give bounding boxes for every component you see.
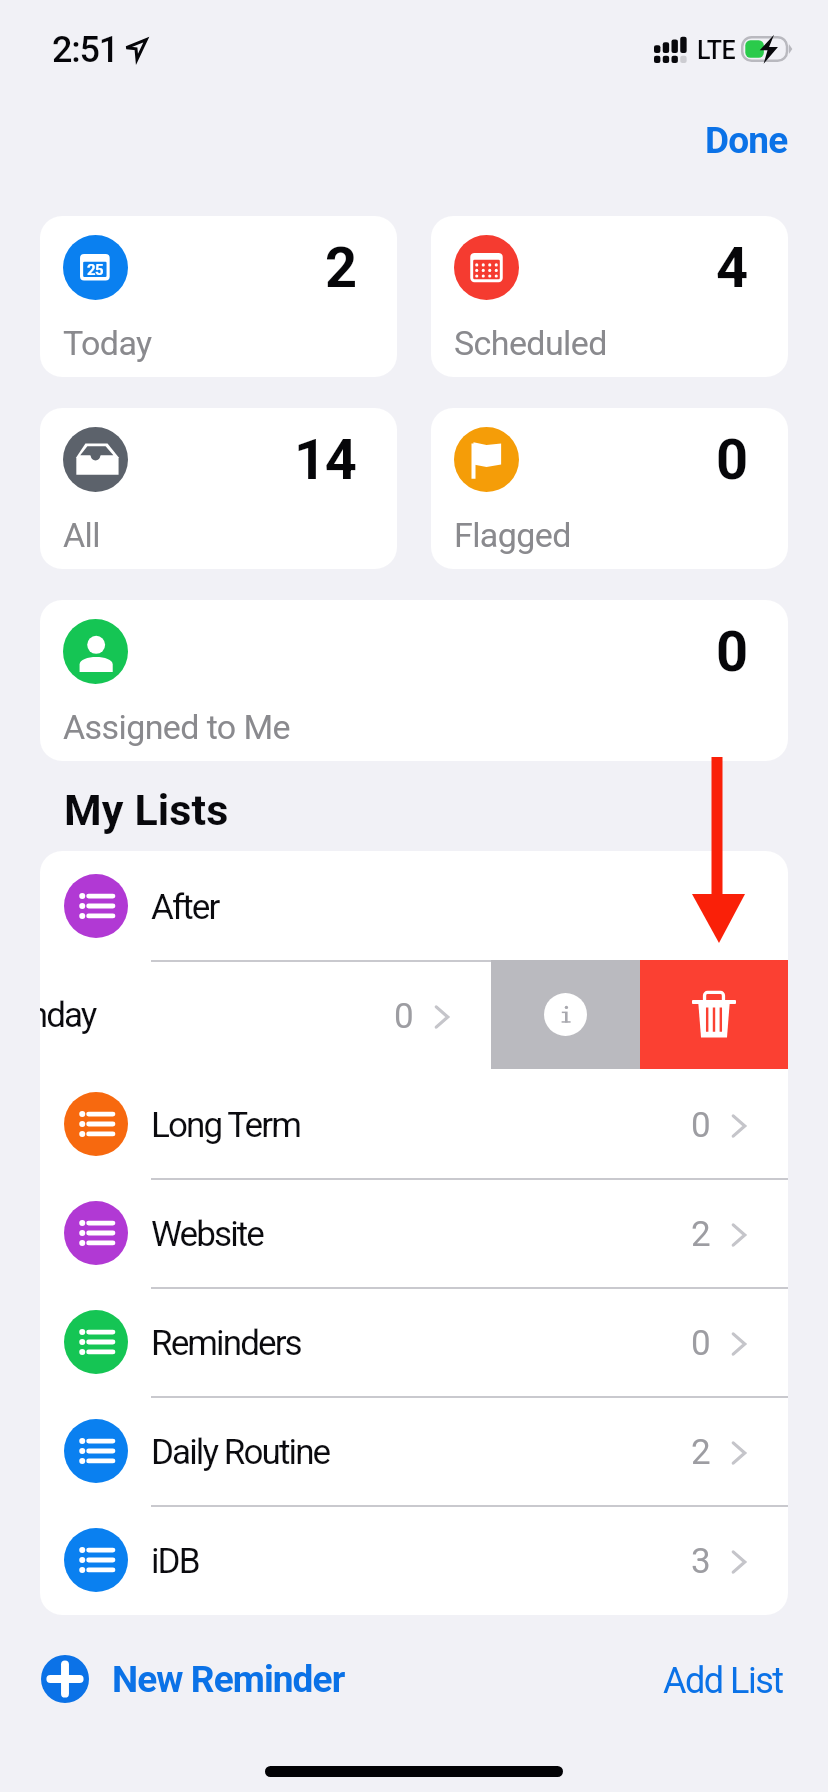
staticText: Daily Routine [151, 1432, 330, 1473]
staticText: New Reminder [112, 1658, 345, 1701]
button[interactable]: 0 [431, 408, 788, 569]
staticText: Monday [40, 995, 96, 1036]
staticText: My Lists [64, 785, 229, 835]
staticText: 14 [294, 427, 356, 493]
staticText: 4 [716, 235, 747, 301]
staticText: 0 [691, 1323, 709, 1364]
button[interactable]: Add List [663, 1660, 783, 1702]
button[interactable]: Daily Routine [40, 1396, 788, 1505]
button[interactable]: 0 [40, 600, 788, 761]
staticText: 0 [716, 619, 747, 685]
staticText: Today [63, 323, 152, 363]
button[interactable]: 25 [40, 216, 397, 377]
staticText: All [63, 515, 100, 555]
staticText: 2 [691, 1432, 709, 1473]
staticText: Scheduled [454, 323, 607, 363]
staticText: After [151, 887, 219, 928]
staticText: 2 [691, 1214, 709, 1255]
staticText: Add List [663, 1660, 783, 1702]
button[interactable]: 4 [431, 216, 788, 377]
staticText: Done [705, 119, 788, 162]
button[interactable]: iDB [40, 1505, 788, 1614]
staticText: 0 [394, 996, 412, 1037]
staticText: 25 [87, 261, 104, 279]
button[interactable]: Reminders [40, 1287, 788, 1396]
button[interactable]: Long Term [40, 1069, 788, 1178]
staticText: iDB [151, 1541, 199, 1582]
staticText: 0 [691, 1105, 709, 1146]
staticText: Flagged [454, 515, 571, 555]
staticText: Long Term [151, 1105, 300, 1146]
button[interactable]: After [40, 851, 788, 960]
button[interactable]: Details [491, 960, 640, 1069]
staticText: Website [151, 1214, 264, 1255]
staticText: 2 [325, 235, 356, 301]
staticText: 0 [716, 427, 747, 493]
staticText: Reminders [151, 1323, 301, 1364]
button[interactable]: New Reminder [41, 1655, 345, 1703]
staticText: LTE [697, 36, 736, 65]
button[interactable]: Delete [640, 960, 788, 1069]
button[interactable]: Website [40, 1178, 788, 1287]
staticText: 3 [691, 1541, 709, 1582]
staticText: Assigned to Me [63, 707, 290, 747]
button[interactable]: 14 [40, 408, 397, 569]
staticText: 2:51 [52, 29, 119, 71]
button[interactable]: Done [677, 103, 816, 178]
